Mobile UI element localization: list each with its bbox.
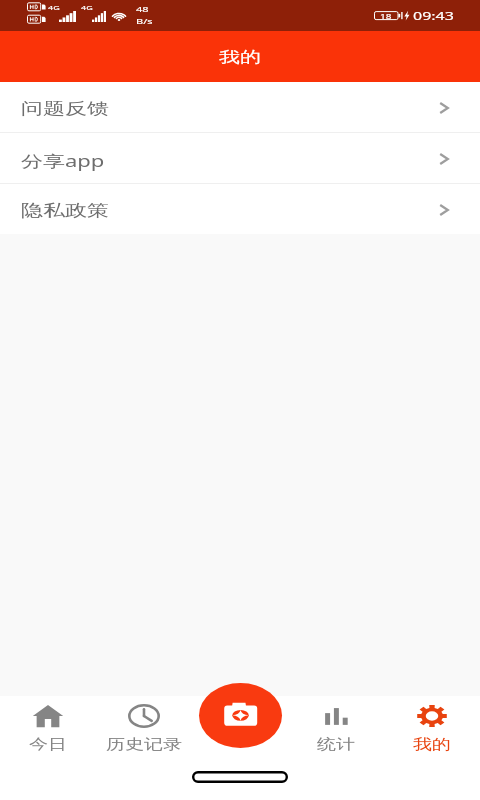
staticText: 隐私政策 xyxy=(21,201,109,221)
button[interactable]: 问题反馈 xyxy=(0,82,480,132)
button[interactable]: 我的 xyxy=(384,696,480,758)
staticText: 分享app xyxy=(21,149,105,171)
staticText: 4G xyxy=(48,3,60,11)
staticText: 统计 xyxy=(317,735,355,753)
staticText: 18 xyxy=(380,11,392,20)
button[interactable]: 历史记录 xyxy=(96,696,192,758)
staticText: 09:43 xyxy=(413,8,454,24)
button[interactable]: 隐私政策 xyxy=(0,184,480,234)
staticText: 我的 xyxy=(219,48,261,66)
staticText: 48 xyxy=(136,3,149,14)
staticText: 今日 xyxy=(29,735,67,753)
staticText: 历史记录 xyxy=(106,735,182,753)
button[interactable]: 统计 xyxy=(288,696,384,758)
button[interactable]: 拍照 xyxy=(199,683,282,748)
staticText: 问题反馈 xyxy=(21,99,109,119)
staticText: B/s xyxy=(136,15,153,26)
button[interactable]: 分享app xyxy=(0,133,480,183)
staticText: 我的 xyxy=(413,735,451,753)
button[interactable]: 今日 xyxy=(0,696,96,758)
staticText: 4G xyxy=(81,3,93,11)
